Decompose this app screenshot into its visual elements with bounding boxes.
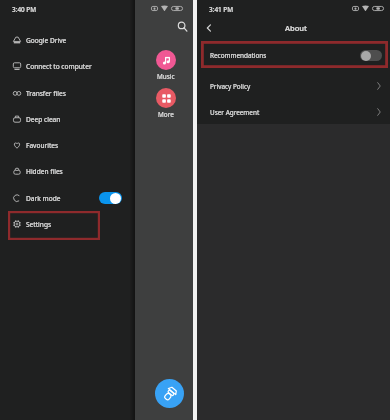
- button[interactable]: Transfer files: [0, 80, 135, 106]
- staticText: Google Drive: [26, 36, 67, 45]
- staticText: About: [285, 23, 307, 33]
- button[interactable]: Settings: [0, 211, 135, 237]
- staticText: Transfer files: [26, 89, 66, 98]
- staticText: User Agreement: [210, 108, 260, 117]
- button[interactable]: Search: [177, 21, 188, 32]
- staticText: Deep clean: [26, 115, 61, 124]
- staticText: Connect to computer: [26, 62, 92, 71]
- staticText: 3:40 PM: [12, 5, 37, 14]
- staticText: Hidden files: [26, 167, 63, 176]
- staticText: Music: [157, 72, 175, 81]
- staticText: 3:41 PM: [209, 5, 234, 14]
- button[interactable]: Hidden files: [0, 158, 135, 184]
- button[interactable]: Favourites: [0, 132, 135, 158]
- button[interactable]: Privacy Policy: [197, 73, 390, 99]
- button[interactable]: Back: [203, 22, 215, 34]
- button[interactable]: Clean: [155, 379, 184, 408]
- button[interactable]: More: [156, 88, 176, 119]
- button[interactable]: Deep clean: [0, 106, 135, 132]
- staticText: More: [158, 110, 174, 119]
- button[interactable]: Dark mode toggle: [99, 192, 122, 204]
- button[interactable]: Connect to computer: [0, 53, 135, 79]
- button[interactable]: Recommendations: [197, 42, 390, 68]
- staticText: Dark mode: [26, 194, 61, 203]
- staticText: Recommendations: [210, 51, 267, 60]
- staticText: Privacy Policy: [210, 82, 251, 91]
- staticText: Settings: [26, 220, 52, 229]
- button[interactable]: User Agreement: [197, 99, 390, 125]
- button[interactable]: Dark mode: [0, 185, 135, 211]
- button[interactable]: Recommendations toggle: [360, 50, 382, 61]
- button[interactable]: Google Drive: [0, 27, 135, 53]
- button[interactable]: Music: [156, 50, 176, 81]
- staticText: Favourites: [26, 141, 59, 150]
